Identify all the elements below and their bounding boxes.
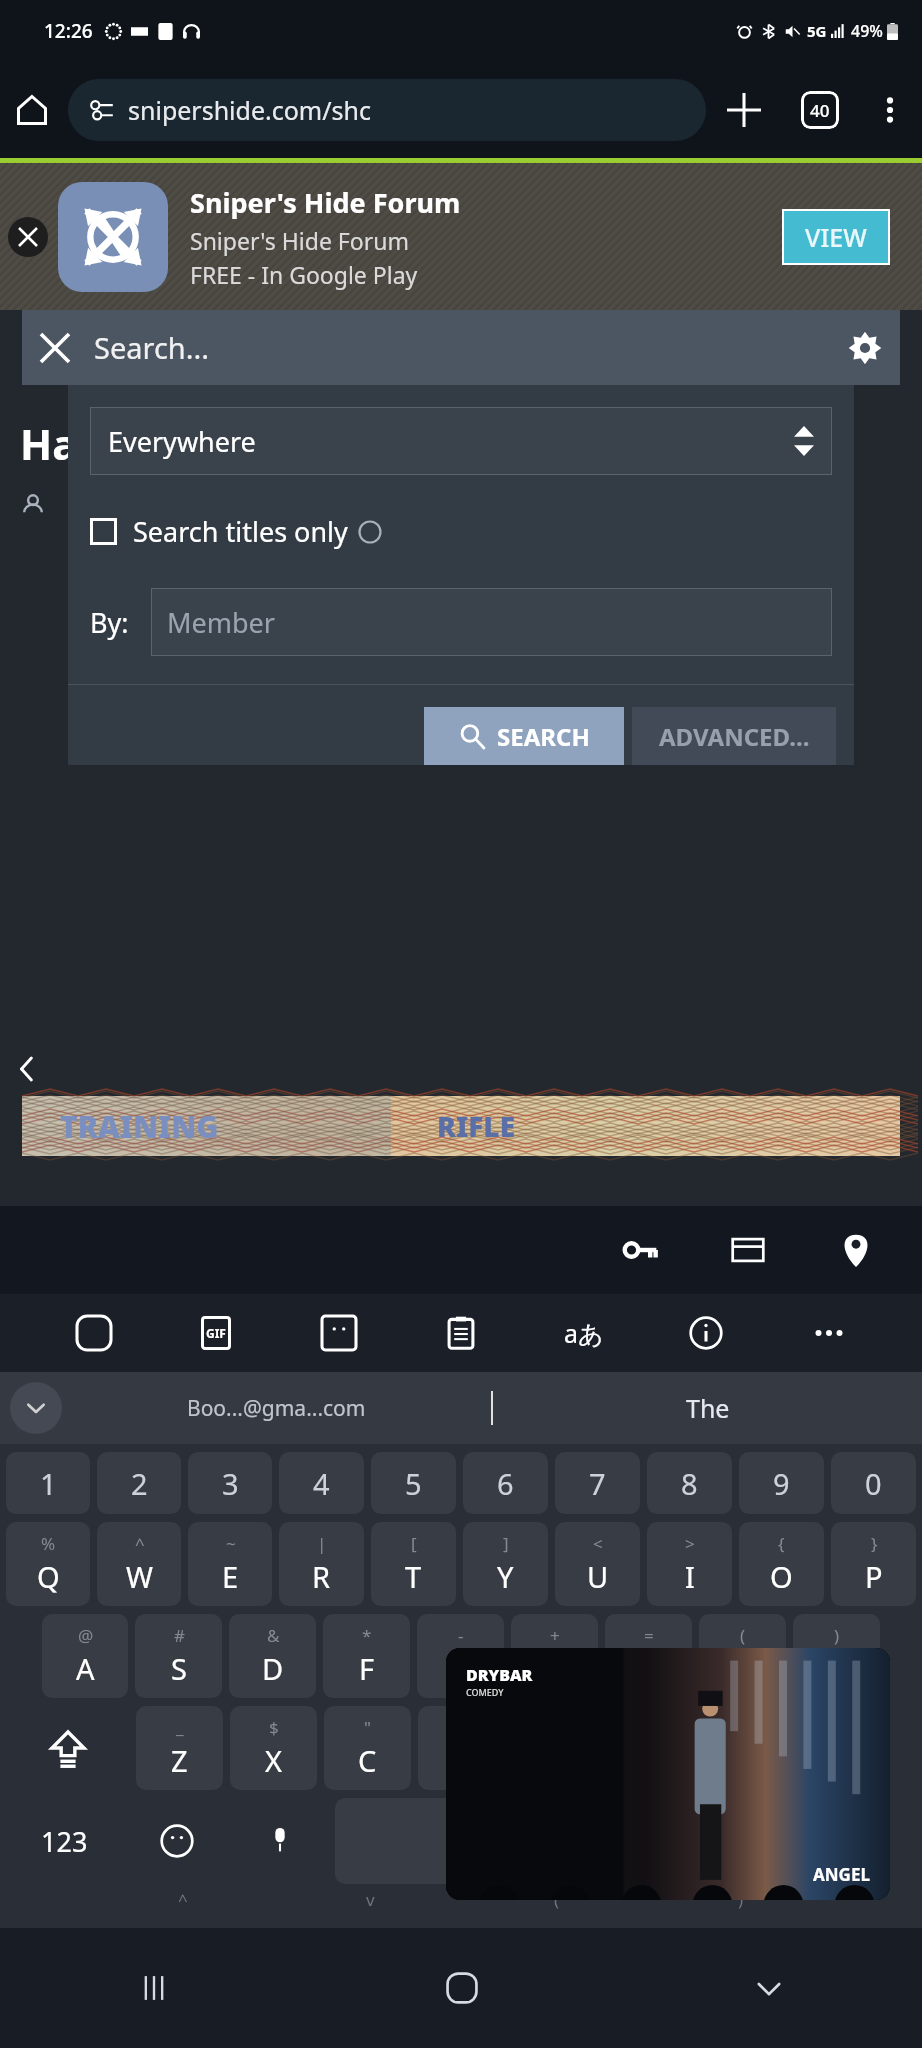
- button[interactable]: <: [555, 1522, 640, 1606]
- button[interactable]: Boo...@gma...com: [62, 1372, 491, 1444]
- button[interactable]: M: [700, 1706, 787, 1790]
- button[interactable]: ]: [463, 1522, 548, 1606]
- button[interactable]: _: [136, 1706, 223, 1790]
- button[interactable]: (: [699, 1614, 786, 1698]
- button[interactable]: Search settings: [830, 313, 900, 383]
- button[interactable]: Payment methods: [710, 1212, 786, 1288]
- staticText: |: [317, 1532, 327, 1555]
- button[interactable]: Close search: [22, 315, 88, 381]
- button[interactable]: $: [230, 1706, 317, 1790]
- button[interactable]: Passwords: [602, 1212, 678, 1288]
- button[interactable]: 1: [6, 1452, 90, 1514]
- button[interactable]: Space: [335, 1798, 652, 1884]
- button[interactable]: 4: [279, 1452, 364, 1514]
- button[interactable]: More options: [858, 78, 922, 142]
- button[interactable]: N: [606, 1706, 693, 1790]
- staticText: X: [265, 1741, 282, 1780]
- staticText: ): [834, 1624, 840, 1647]
- button[interactable]: Previous: [0, 1042, 54, 1096]
- button[interactable]: More: [800, 1304, 858, 1362]
- button[interactable]: +: [511, 1614, 598, 1698]
- button[interactable]: Member: [151, 588, 832, 656]
- staticText: U: [587, 1557, 609, 1596]
- button[interactable]: 8: [647, 1452, 732, 1514]
- staticText: L: [829, 1649, 845, 1688]
- button[interactable]: Picture in picture video: [446, 1648, 890, 1900]
- button[interactable]: Everywhere: [90, 407, 832, 475]
- staticText: aあ: [564, 1316, 604, 1350]
- button[interactable]: %: [6, 1522, 90, 1606]
- button[interactable]: [659, 1798, 774, 1884]
- staticText: [: [411, 1532, 417, 1555]
- button[interactable]: Expand suggestions: [10, 1382, 62, 1434]
- button[interactable]: Hide keyboard: [615, 1928, 922, 2048]
- button[interactable]: Search titles only: [90, 513, 382, 550]
- button[interactable]: Samsung keyboard: [65, 1304, 123, 1362]
- button[interactable]: TRAINING: [22, 1096, 900, 1156]
- staticText: Member: [167, 604, 275, 641]
- button[interactable]: =: [605, 1614, 692, 1698]
- staticText: 7: [589, 1464, 606, 1503]
- button[interactable]: Shift: [6, 1706, 129, 1790]
- button[interactable]: ~: [188, 1522, 272, 1606]
- button[interactable]: 123: [6, 1798, 122, 1884]
- button[interactable]: Backspace: [794, 1706, 916, 1790]
- button[interactable]: ": [324, 1706, 411, 1790]
- button[interactable]: Stickers: [310, 1304, 368, 1362]
- button[interactable]: Voice input: [232, 1798, 328, 1884]
- button[interactable]: Close search: [22, 310, 900, 385]
- button[interactable]: *: [323, 1614, 410, 1698]
- staticText: R: [312, 1557, 331, 1596]
- button[interactable]: -: [417, 1614, 504, 1698]
- staticText: -: [458, 1624, 464, 1647]
- button[interactable]: {: [739, 1522, 824, 1606]
- staticText: #: [174, 1624, 185, 1647]
- button[interactable]: 0: [831, 1452, 916, 1514]
- button[interactable]: Close ad: [8, 217, 48, 257]
- staticText: O: [770, 1557, 793, 1596]
- staticText: M: [730, 1729, 757, 1768]
- button[interactable]: Recents: [0, 1928, 308, 2048]
- button[interactable]: &: [229, 1614, 316, 1698]
- button[interactable]: ): [793, 1614, 880, 1698]
- button[interactable]: Tabs: 40: [782, 72, 858, 148]
- button[interactable]: VIEW: [784, 211, 888, 263]
- button[interactable]: V: [418, 1706, 505, 1790]
- button[interactable]: New tab: [706, 72, 782, 148]
- button[interactable]: [: [371, 1522, 456, 1606]
- button[interactable]: [781, 1798, 916, 1884]
- staticText: F: [359, 1649, 375, 1688]
- button[interactable]: 9: [739, 1452, 824, 1514]
- button[interactable]: 7: [555, 1452, 640, 1514]
- button[interactable]: |: [279, 1522, 364, 1606]
- button[interactable]: snipershide.com/shc: [68, 79, 706, 141]
- staticText: 12:26: [44, 18, 93, 44]
- button[interactable]: 5: [371, 1452, 456, 1514]
- button[interactable]: >: [647, 1522, 732, 1606]
- staticText: G: [450, 1649, 472, 1688]
- button[interactable]: SEARCH: [424, 707, 624, 765]
- button[interactable]: Home: [308, 1928, 615, 2048]
- button[interactable]: The: [493, 1372, 922, 1444]
- button[interactable]: @: [42, 1614, 128, 1698]
- staticText: K: [734, 1649, 752, 1688]
- button[interactable]: 6: [463, 1452, 548, 1514]
- button[interactable]: Info: [677, 1304, 735, 1362]
- button[interactable]: 3: [188, 1452, 272, 1514]
- button[interactable]: GIF: [187, 1304, 245, 1362]
- button[interactable]: 2: [97, 1452, 181, 1514]
- button[interactable]: Clipboard: [432, 1304, 490, 1362]
- button[interactable]: }: [831, 1522, 916, 1606]
- button[interactable]: #: [135, 1614, 222, 1698]
- button[interactable]: ADVANCED...: [632, 707, 836, 765]
- button[interactable]: Home: [0, 78, 64, 142]
- button[interactable]: Emoji: [129, 1798, 225, 1884]
- button[interactable]: Addresses: [818, 1212, 894, 1288]
- staticText: @: [78, 1624, 94, 1647]
- button[interactable]: Translate: [555, 1304, 613, 1362]
- button[interactable]: ^: [97, 1522, 181, 1606]
